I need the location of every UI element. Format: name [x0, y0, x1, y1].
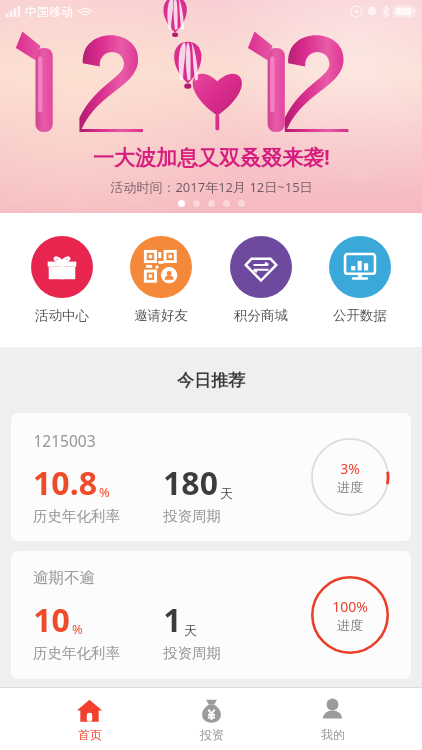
button[interactable]: 1215003: [11, 413, 411, 541]
button[interactable]: 投资: [180, 693, 243, 746]
staticText: 3%: [340, 459, 360, 478]
staticText: 中国移动: [25, 4, 73, 19]
staticText: 公开数据: [333, 307, 387, 324]
staticText: 1: [163, 598, 182, 642]
staticText: 一大波加息又双叒叕来袭!: [93, 143, 330, 172]
button[interactable]: 公开数据: [323, 232, 397, 328]
staticText: 逾期不逾: [33, 568, 95, 588]
staticText: 积分商城: [234, 307, 288, 324]
staticText: 今日推荐: [177, 370, 245, 391]
button[interactable]: 首页: [58, 693, 121, 746]
staticText: 进度: [337, 479, 363, 495]
staticText: 投资: [200, 727, 224, 742]
staticText: 10.8: [33, 461, 97, 505]
staticText: %: [99, 483, 110, 501]
staticText: 首页: [78, 727, 102, 742]
staticText: 180: [163, 461, 218, 505]
staticText: 我的: [321, 727, 345, 742]
staticText: 10: [33, 598, 70, 642]
staticText: 天: [220, 485, 233, 501]
staticText: 活动时间：2017年12月 12日~15日: [110, 178, 313, 196]
button[interactable]: 逾期不逾: [11, 551, 411, 679]
staticText: 1215003: [33, 430, 96, 451]
staticText: 历史年化利率: [33, 507, 120, 525]
staticText: 天: [184, 622, 197, 638]
button[interactable]: 积分商城: [224, 232, 298, 328]
staticText: 活动中心: [35, 307, 89, 324]
staticText: 邀请好友: [134, 307, 188, 324]
staticText: %: [72, 620, 83, 638]
button[interactable]: 我的: [301, 693, 364, 746]
button[interactable]: 活动中心: [25, 232, 99, 328]
button[interactable]: 邀请好友: [124, 232, 198, 328]
staticText: 投资周期: [163, 644, 221, 662]
staticText: 进度: [337, 617, 363, 633]
staticText: 100%: [332, 597, 368, 616]
staticText: 历史年化利率: [33, 644, 120, 662]
staticText: 投资周期: [163, 507, 221, 525]
